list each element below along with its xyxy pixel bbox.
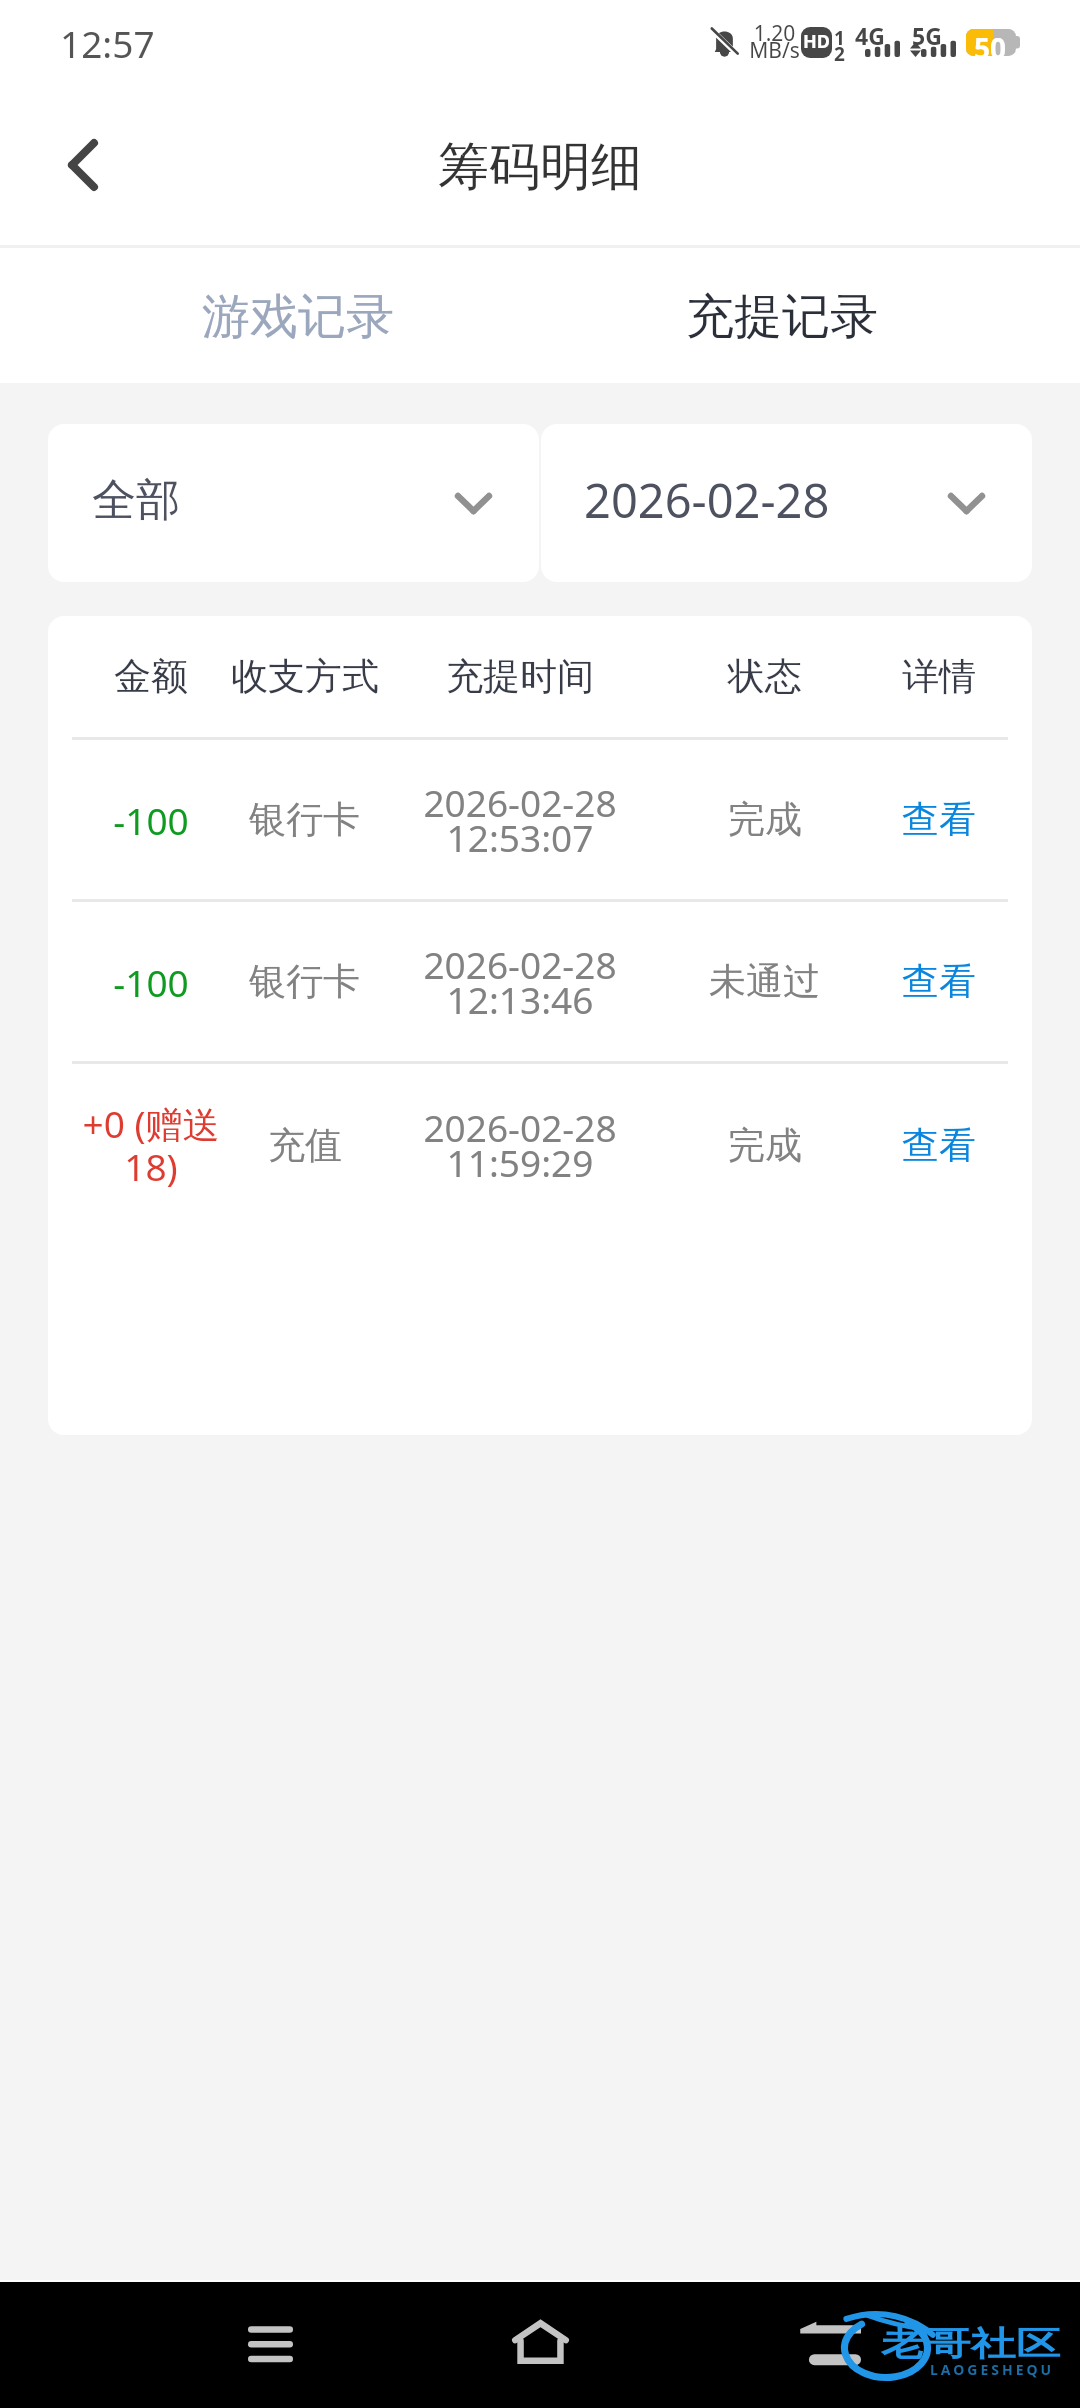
staticText: HD <box>803 29 830 54</box>
staticText: 2026-02-28 <box>584 468 830 532</box>
button[interactable]: 游戏记录 <box>56 248 540 383</box>
staticText: 银行卡 <box>249 796 360 843</box>
button[interactable]: Back <box>28 110 138 220</box>
staticText: -100 <box>113 795 189 845</box>
staticText: 金额 <box>114 653 188 700</box>
staticText: 4G <box>855 20 885 51</box>
staticText: 完成 <box>728 796 802 843</box>
button[interactable]: -100 <box>48 902 1032 1061</box>
staticText: -100 <box>113 957 189 1007</box>
button[interactable]: Home <box>470 2282 610 2408</box>
staticText: 充提记录 <box>686 287 878 347</box>
button[interactable]: 全部 <box>48 424 539 582</box>
staticText: LAOGESHEQU <box>930 2360 1055 2379</box>
button[interactable]: 查看 <box>867 1064 1011 1226</box>
button[interactable]: 查看 <box>867 740 1011 899</box>
staticText: 50 <box>974 29 1007 56</box>
staticText: 1.20 MB/s <box>749 19 800 64</box>
staticText: 银行卡 <box>249 958 360 1005</box>
staticText: 详情 <box>902 653 976 700</box>
staticText: 老哥社区 <box>881 2323 1060 2365</box>
staticText: 游戏记录 <box>202 287 394 347</box>
button[interactable]: 充提记录 <box>540 248 1024 383</box>
staticText: 1 2 <box>834 25 845 66</box>
staticText: 5G <box>912 20 942 51</box>
staticText: 充提时间 <box>446 653 594 700</box>
staticText: 查看 <box>902 958 976 1005</box>
staticText: 2026-02-28 11:59:29 <box>423 1102 617 1188</box>
button[interactable]: Back <box>760 2282 900 2408</box>
button[interactable]: +0 (赠送 18) <box>48 1064 1032 1226</box>
staticText: 未通过 <box>709 958 820 1005</box>
button[interactable]: Recent apps <box>200 2282 340 2408</box>
button[interactable]: 2026-02-28 <box>541 424 1032 582</box>
staticText: 充值 <box>268 1122 342 1169</box>
staticText: 筹码明细 <box>438 135 642 199</box>
staticText: 12:57 <box>60 18 155 68</box>
staticText: 完成 <box>728 1122 802 1169</box>
staticText: 查看 <box>902 796 976 843</box>
staticText: 状态 <box>728 653 802 700</box>
staticText: +0 (赠送 18) <box>71 1098 231 1192</box>
staticText: 2026-02-28 12:53:07 <box>423 777 617 863</box>
staticText: 全部 <box>92 473 180 528</box>
button[interactable]: -100 <box>48 740 1032 899</box>
staticText: 收支方式 <box>231 653 379 700</box>
staticText: 2026-02-28 12:13:46 <box>423 939 617 1025</box>
staticText: 查看 <box>902 1122 976 1169</box>
button[interactable]: 查看 <box>867 902 1011 1061</box>
